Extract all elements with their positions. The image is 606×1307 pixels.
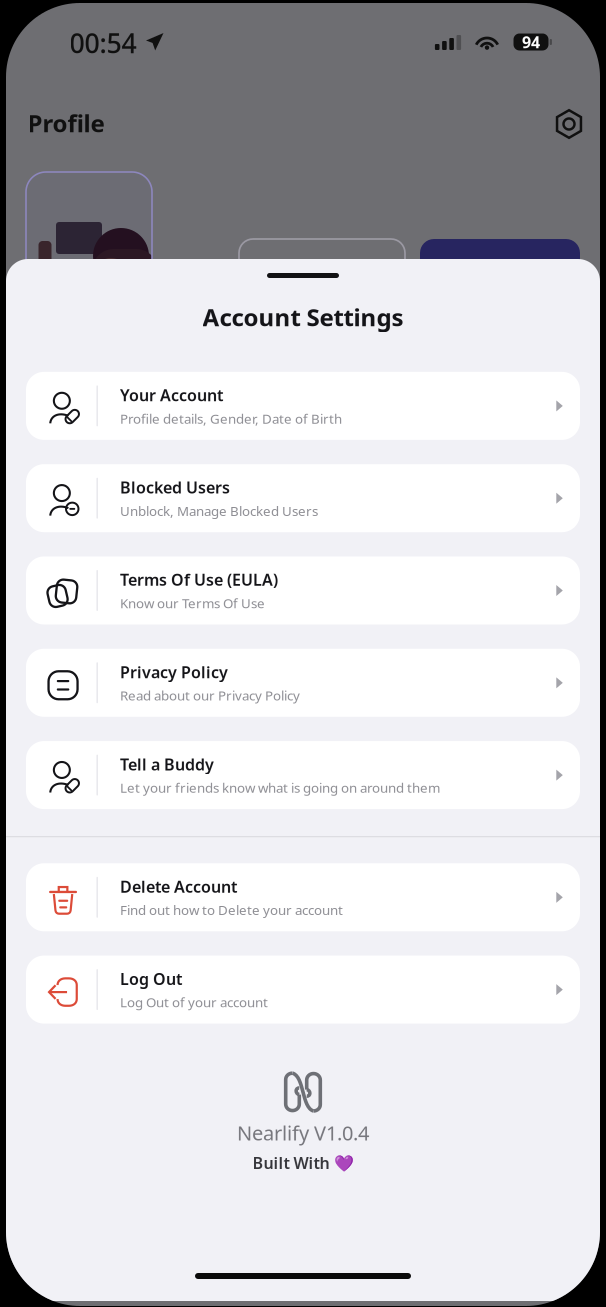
staticText: Terms Of Use (EULA) bbox=[120, 569, 278, 590]
button[interactable]: Settings bbox=[554, 109, 584, 139]
staticText: Nearlify V1.0.4 bbox=[237, 1120, 369, 1146]
button[interactable]: Terms Of Use (EULA) bbox=[26, 556, 580, 624]
button[interactable]: Profile bbox=[27, 107, 104, 139]
button[interactable]: Delete Account bbox=[26, 863, 580, 931]
staticText: 94 bbox=[522, 31, 540, 53]
staticText: Profile bbox=[27, 107, 104, 139]
button[interactable]: Privacy Policy bbox=[26, 649, 580, 717]
button[interactable]: Tell a Buddy bbox=[26, 741, 580, 809]
staticText: Let your friends know what is going on a… bbox=[120, 779, 440, 796]
staticText: Find out how to Delete your account bbox=[120, 901, 343, 919]
staticText: 00:54 bbox=[69, 25, 136, 61]
button[interactable]: Blocked Users bbox=[26, 464, 580, 532]
staticText: Your Account bbox=[120, 384, 223, 406]
button[interactable]: Log Out bbox=[26, 956, 580, 1024]
staticText: Tell a Buddy bbox=[120, 754, 214, 775]
staticText: Profile details, Gender, Date of Birth bbox=[120, 410, 342, 427]
staticText: Privacy Policy bbox=[120, 661, 228, 682]
staticText: Delete Account bbox=[120, 876, 237, 897]
button[interactable]: Your Account bbox=[26, 372, 580, 440]
staticText: Account Settings bbox=[202, 301, 403, 333]
staticText: Read about our Privacy Policy bbox=[120, 686, 300, 704]
staticText: Unblock, Manage Blocked Users bbox=[120, 502, 318, 520]
staticText: Blocked Users bbox=[120, 477, 230, 498]
staticText: Know our Terms Of Use bbox=[120, 594, 265, 612]
staticText: Built With 💜 bbox=[252, 1152, 353, 1173]
staticText: Log Out of your account bbox=[120, 993, 268, 1011]
staticText: Log Out bbox=[120, 968, 182, 989]
